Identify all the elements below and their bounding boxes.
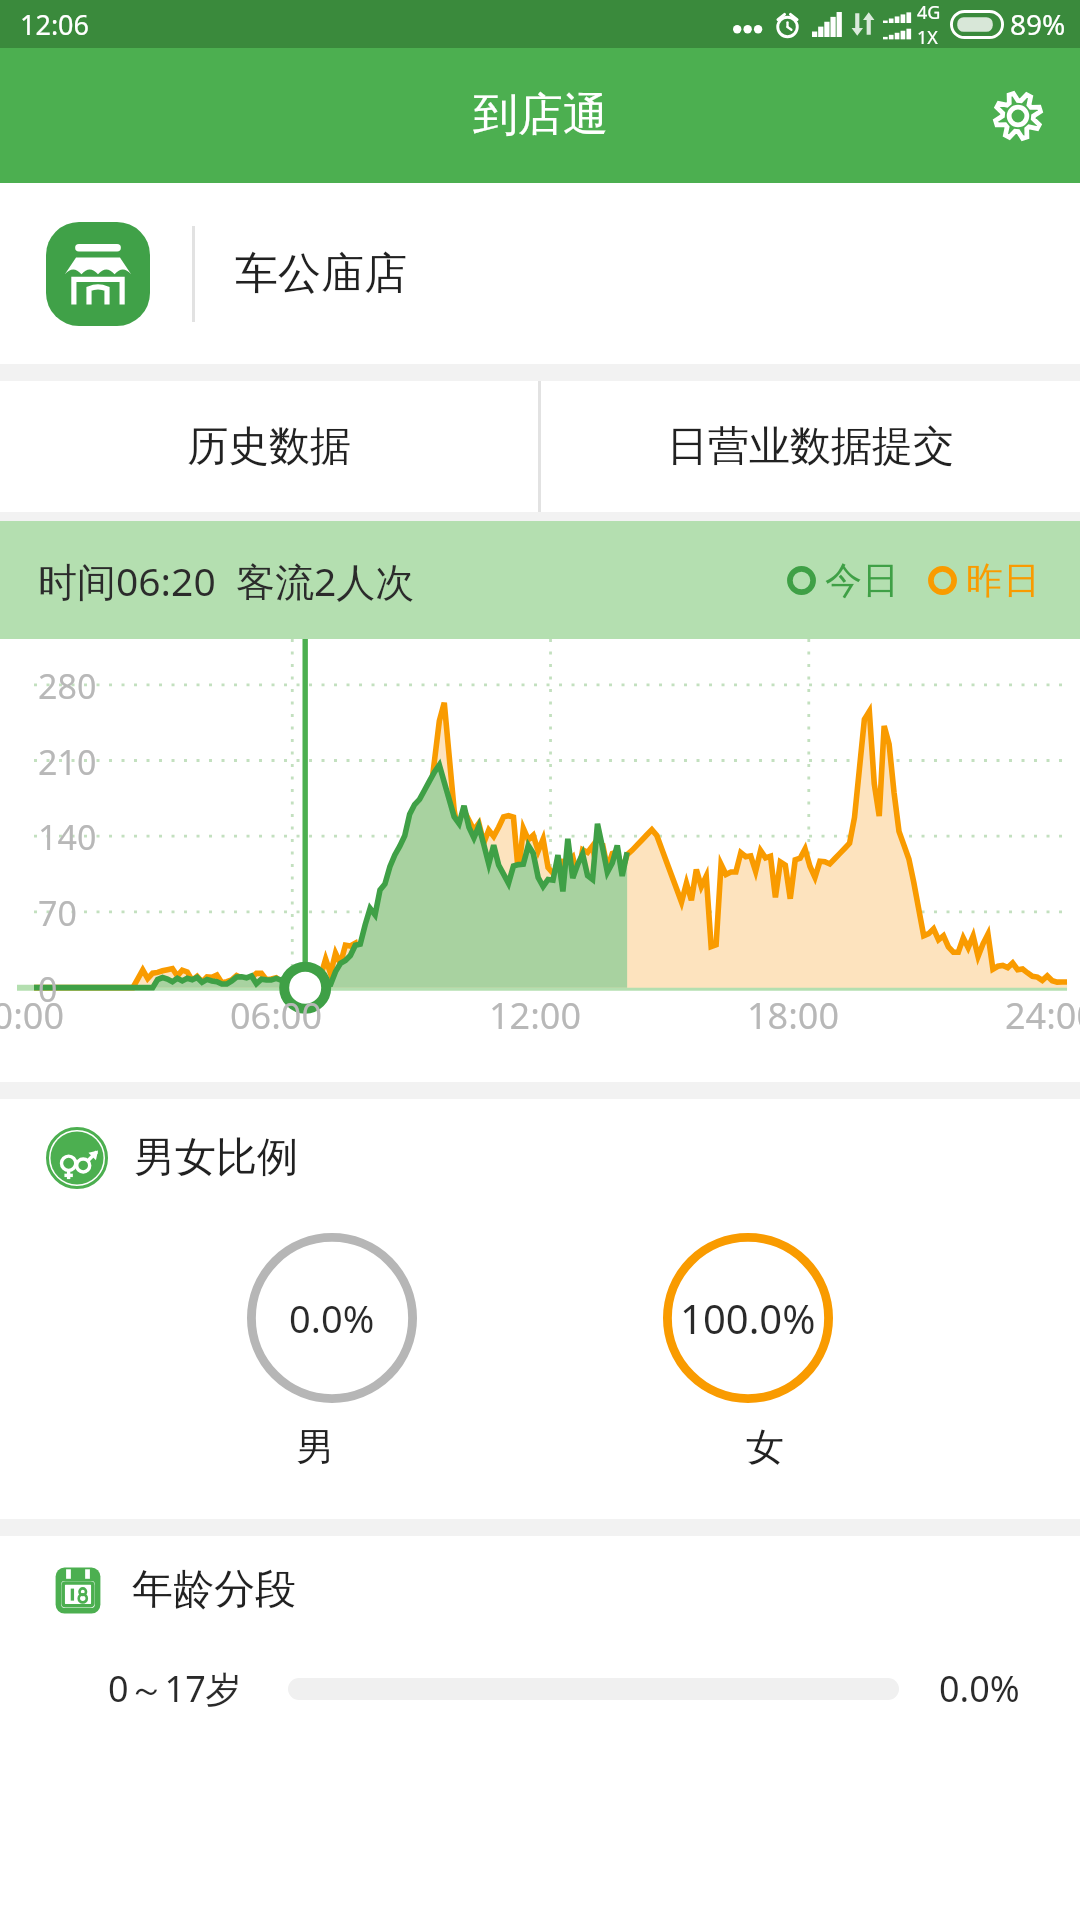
staticText: 年龄分段 [132, 1564, 296, 1616]
staticText: 车公庙店 [235, 247, 407, 301]
button[interactable]: Settings [978, 76, 1058, 156]
staticText: 今日 [825, 557, 899, 604]
staticText: 06:00 [230, 991, 323, 1040]
staticText: 70 [38, 890, 77, 936]
staticText: 0～17岁 [108, 1664, 242, 1713]
staticText: 140 [38, 814, 97, 860]
staticText: 100.0% [680, 1291, 816, 1345]
button[interactable]: 今日 [788, 557, 899, 604]
staticText: 12:06 [20, 6, 90, 43]
staticText: 12:00 [489, 991, 582, 1040]
staticText: 女 [746, 1423, 784, 1471]
button[interactable]: 日营业数据提交 [541, 381, 1080, 512]
staticText: 1X [917, 25, 938, 48]
staticText: 时间06:20 客流2人次 [38, 554, 415, 607]
staticText: 0.0% [939, 1664, 1020, 1713]
button[interactable]: 历史数据 [0, 381, 538, 512]
staticText: 4G [917, 0, 941, 25]
staticText: 日营业数据提交 [667, 421, 954, 473]
staticText: 210 [38, 739, 97, 785]
staticText: 89% [1010, 5, 1066, 43]
staticText: 到店通 [473, 87, 608, 144]
staticText: 男 [296, 1423, 334, 1471]
staticText: 18:00 [747, 991, 840, 1040]
staticText: 历史数据 [187, 421, 351, 473]
staticText: 00:00 [0, 991, 65, 1040]
staticText: 昨日 [966, 557, 1040, 604]
staticText: 男女比例 [134, 1132, 298, 1184]
button[interactable]: 车公庙店 [0, 183, 1080, 364]
staticText: 24:00 [1005, 991, 1080, 1040]
staticText: 0 [38, 966, 58, 1012]
button[interactable]: 昨日 [929, 557, 1040, 604]
staticText: 280 [38, 663, 97, 709]
staticText: 0.0% [289, 1292, 375, 1344]
